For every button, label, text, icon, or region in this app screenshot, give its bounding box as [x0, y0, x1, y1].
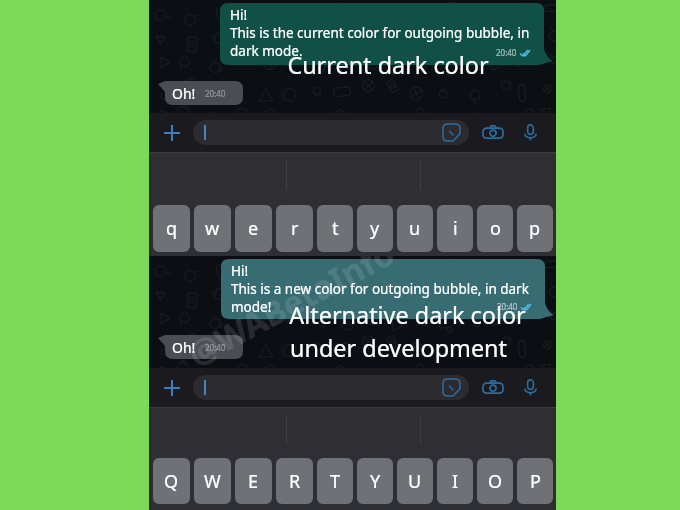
button[interactable]: r — [276, 205, 313, 252]
button[interactable]: Voice message — [521, 378, 540, 397]
button[interactable]: w — [194, 205, 231, 252]
staticText: Hi! — [230, 6, 248, 24]
button[interactable]: E — [235, 458, 272, 504]
staticText: w — [205, 216, 220, 241]
button[interactable]: Sticker — [193, 375, 469, 400]
button[interactable]: W — [194, 458, 231, 504]
staticText: Alternative dark color — [289, 299, 526, 331]
button[interactable]: e — [235, 205, 272, 252]
button[interactable]: Y — [357, 458, 393, 504]
staticText: o — [490, 216, 501, 241]
staticText: e — [248, 216, 259, 241]
staticText: r — [291, 216, 299, 241]
staticText: O — [488, 469, 503, 494]
button[interactable]: Camera — [483, 123, 503, 143]
staticText: 20:40 — [205, 88, 226, 99]
staticText: R — [289, 469, 301, 494]
staticText: under development — [290, 332, 507, 364]
staticText: This is the current color for outgoing b… — [230, 24, 530, 42]
button[interactable]: I — [437, 458, 473, 504]
staticText: Y — [370, 469, 381, 494]
staticText: i — [453, 216, 458, 241]
staticText: q — [166, 216, 178, 241]
button[interactable]: q — [153, 205, 190, 252]
button[interactable]: o — [477, 205, 513, 252]
staticText: U — [408, 469, 422, 494]
button[interactable]: i — [437, 205, 473, 252]
button[interactable]: Q — [153, 458, 190, 504]
button[interactable]: y — [357, 205, 393, 252]
staticText: This is a new color for outgoing bubble,… — [231, 280, 529, 298]
staticText: p — [529, 216, 541, 241]
staticText: P — [530, 469, 541, 494]
button[interactable]: t — [317, 205, 353, 252]
button[interactable]: Voice message — [521, 123, 540, 142]
staticText: 20:40 — [496, 47, 517, 58]
staticText: W — [204, 469, 221, 494]
staticText: dark mode. — [230, 42, 303, 60]
button[interactable]: Attach — [161, 122, 183, 144]
staticText: @WABetaInfo — [180, 256, 402, 368]
staticText: I — [452, 469, 459, 494]
staticText: 20:40 — [497, 301, 518, 312]
staticText: u — [409, 216, 421, 241]
staticText: Oh! — [172, 84, 196, 103]
other: Sticker — [443, 124, 460, 141]
button[interactable]: u — [397, 205, 433, 252]
button[interactable]: O — [477, 458, 513, 504]
other: Sticker — [443, 379, 460, 396]
staticText: Oh! — [172, 338, 196, 357]
staticText: Hi! — [231, 262, 249, 280]
staticText: E — [248, 469, 259, 494]
staticText: Current dark color — [287, 49, 489, 81]
button[interactable]: U — [397, 458, 433, 504]
staticText: Q — [164, 469, 179, 494]
button[interactable]: T — [317, 458, 353, 504]
button[interactable]: R — [276, 458, 313, 504]
button[interactable]: p — [517, 205, 553, 252]
staticText: T — [330, 469, 341, 494]
button[interactable]: Camera — [483, 378, 503, 398]
button[interactable]: P — [517, 458, 553, 504]
staticText: 20:40 — [205, 342, 226, 353]
staticText: mode! — [231, 298, 272, 316]
staticText: t — [332, 216, 339, 241]
staticText: y — [370, 216, 380, 241]
button[interactable]: Attach — [161, 377, 183, 399]
button[interactable]: Sticker — [193, 120, 469, 145]
